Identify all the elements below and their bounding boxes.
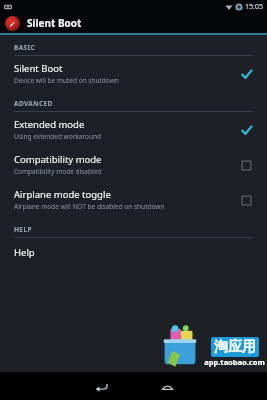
- button[interactable]: Checked: [239, 123, 253, 137]
- button[interactable]: Unchecked: [239, 193, 253, 207]
- staticText: ADVANCED: [14, 99, 53, 108]
- button[interactable]: Home: [147, 372, 187, 400]
- staticText: Extended mode: [14, 118, 85, 131]
- staticText: Compatibility mode disabled: [14, 167, 102, 176]
- button[interactable]: Compatibility mode: [0, 147, 267, 182]
- staticText: Compatibility mode: [14, 153, 102, 166]
- staticText: HELP: [14, 225, 32, 234]
- button[interactable]: Checked: [239, 67, 253, 81]
- button[interactable]: Unchecked: [239, 158, 253, 172]
- staticText: app.taobao.com: [204, 357, 265, 367]
- button[interactable]: Airplane mode toggle: [0, 182, 267, 217]
- staticText: Help: [14, 246, 35, 259]
- staticText: 淘应用: [214, 338, 256, 356]
- staticText: Silent Boot: [14, 62, 63, 75]
- button[interactable]: Extended mode: [0, 112, 267, 147]
- staticText: Airplane mode toggle: [14, 188, 111, 201]
- staticText: Using extended workaround: [14, 132, 101, 141]
- staticText: Silent Boot: [27, 16, 82, 30]
- button[interactable]: Back: [81, 372, 121, 400]
- staticText: Airplane mode will NOT be disabled on sh…: [14, 202, 165, 211]
- staticText: 15:05: [245, 2, 263, 12]
- button[interactable]: Silent Boot: [0, 56, 267, 91]
- staticText: BASIC: [14, 43, 36, 52]
- button[interactable]: Help: [0, 238, 267, 267]
- staticText: Device will be muted on shutdown: [14, 76, 119, 85]
